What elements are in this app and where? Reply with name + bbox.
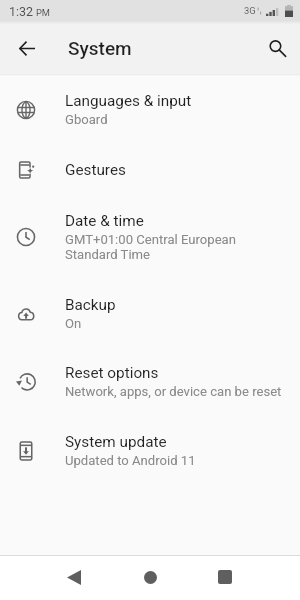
staticText: Languages & input	[65, 92, 192, 110]
button[interactable]: Home	[126, 555, 174, 599]
staticText: Reset options	[65, 364, 159, 382]
button[interactable]: Gestures	[0, 155, 300, 184]
staticText: 3G	[244, 5, 256, 16]
staticText: Gboard	[65, 112, 108, 127]
button[interactable]: Search	[259, 30, 295, 66]
button[interactable]: Navigate up	[9, 30, 45, 66]
staticText: System update	[65, 433, 167, 451]
button[interactable]: Recent apps	[201, 555, 249, 599]
staticText: On	[65, 316, 82, 331]
button[interactable]: Languages & input	[0, 86, 300, 133]
staticText: Gestures	[65, 161, 126, 179]
staticText: 1:32	[9, 4, 34, 19]
button[interactable]: Back	[50, 555, 98, 599]
staticText: Network, apps, or device can be reset	[65, 384, 282, 399]
button[interactable]: Date & time	[0, 206, 300, 269]
staticText: System	[68, 37, 132, 59]
button[interactable]: System update	[0, 427, 300, 474]
staticText: Date & time	[65, 212, 144, 230]
staticText: PM	[36, 7, 50, 18]
button[interactable]: Backup	[0, 290, 300, 337]
button[interactable]: Reset options	[0, 358, 300, 405]
staticText: GMT+01:00 Central European	[65, 232, 236, 247]
staticText: Standard Time	[65, 247, 151, 262]
staticText: Updated to Android 11	[65, 453, 196, 468]
staticText: Backup	[65, 296, 116, 314]
